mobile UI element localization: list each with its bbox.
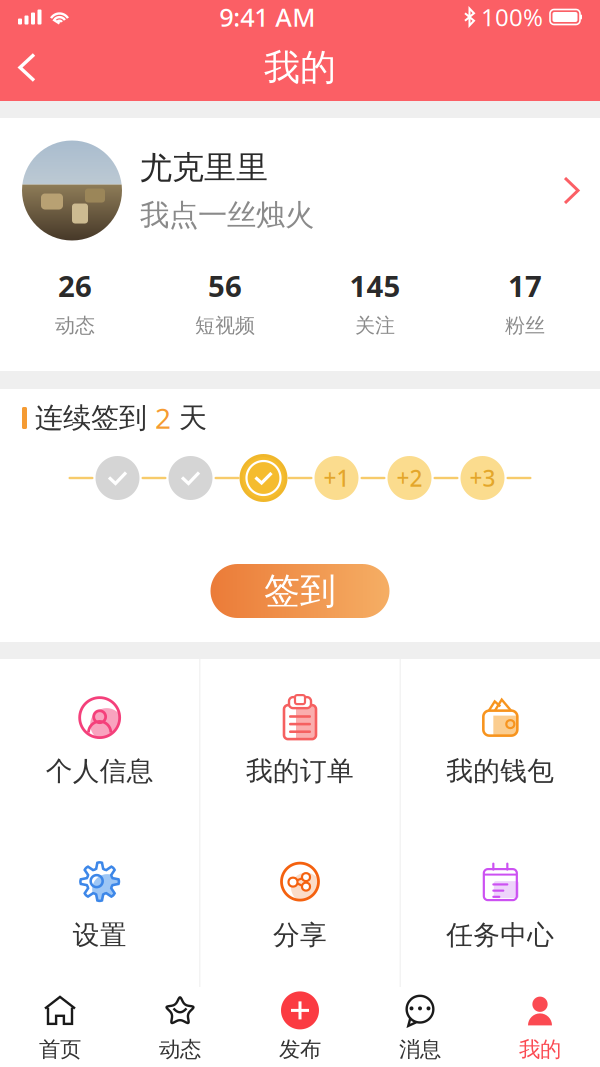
staticText: 2	[155, 399, 171, 437]
button[interactable]: 56	[150, 263, 300, 341]
button[interactable]: Back	[0, 34, 54, 101]
button[interactable]: 尤克里里	[0, 118, 600, 263]
staticText: 连续签到	[35, 401, 147, 435]
staticText: 分享	[273, 919, 327, 951]
button[interactable]: 145	[300, 263, 450, 341]
staticText: 26	[58, 266, 92, 305]
button[interactable]: 分享	[200, 823, 400, 987]
button[interactable]: 动态	[120, 987, 240, 1067]
staticText: 17	[508, 266, 542, 305]
staticText: 56	[208, 266, 242, 305]
staticText: 145	[349, 266, 400, 305]
staticText: +3	[469, 463, 495, 493]
staticText: 设置	[73, 919, 127, 951]
staticText: 任务中心	[446, 919, 554, 951]
staticText: 关注	[355, 313, 395, 338]
button[interactable]: 消息	[360, 987, 480, 1067]
staticText: 发布	[279, 1036, 321, 1063]
staticText: 消息	[399, 1036, 441, 1063]
button[interactable]: 首页	[0, 987, 120, 1067]
staticText: 动态	[159, 1036, 201, 1063]
button[interactable]: 17	[450, 263, 600, 341]
button[interactable]: 我的钱包	[401, 659, 600, 823]
staticText: 短视频	[195, 313, 255, 338]
staticText: 尤克里里	[140, 148, 268, 187]
staticText: 我的	[264, 45, 336, 90]
staticText: 粉丝	[505, 313, 545, 338]
staticText: 我的	[519, 1036, 561, 1063]
staticText: +1	[323, 463, 349, 493]
button[interactable]: 我的	[480, 987, 600, 1067]
button[interactable]: 设置	[0, 823, 199, 987]
button[interactable]: 26	[0, 263, 150, 341]
staticText: 动态	[55, 313, 95, 338]
staticText: 100%	[481, 1, 543, 33]
button[interactable]: 签到	[210, 564, 389, 618]
button[interactable]: 个人信息	[0, 659, 199, 823]
staticText: 9:41 AM	[219, 0, 315, 34]
staticText: 我的钱包	[446, 755, 554, 787]
staticText: +2	[396, 463, 422, 493]
staticText: 我点一丝烛火	[140, 197, 314, 233]
button[interactable]: 任务中心	[401, 823, 600, 987]
staticText: 天	[179, 401, 207, 435]
staticText: 首页	[39, 1036, 81, 1063]
button[interactable]: 发布	[240, 987, 360, 1067]
staticText: 签到	[264, 569, 336, 613]
staticText: 个人信息	[46, 755, 154, 787]
button[interactable]: 我的订单	[200, 659, 400, 823]
staticText: 我的订单	[246, 755, 354, 787]
